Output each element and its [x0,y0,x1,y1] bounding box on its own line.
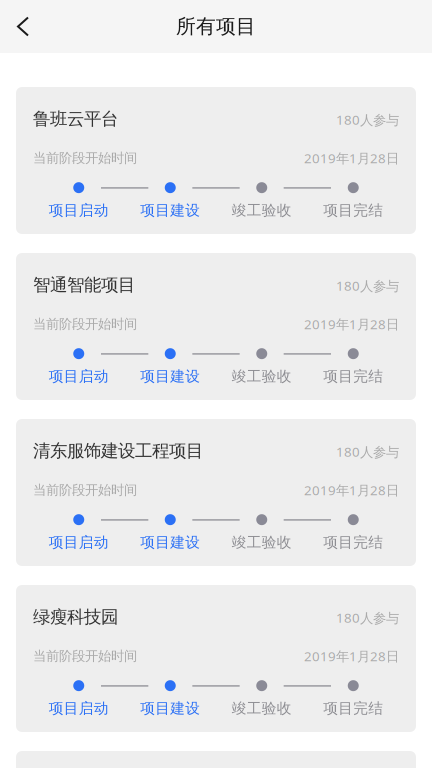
button[interactable]: 智通智能项目 [16,253,416,400]
staticText: 2019年1月28日 [304,481,399,499]
staticText: 鲁班云平台 [33,108,118,130]
staticText: 180人参与 [336,277,399,295]
staticText: 清东服饰建设工程项目 [33,440,203,462]
staticText: 项目启动 [49,533,109,552]
staticText: 智通智能项目 [33,274,135,296]
button[interactable]: 鲁班云平台 [16,87,416,234]
staticText: 项目完结 [323,533,383,552]
staticText: 项目完结 [323,699,383,718]
staticText: 180人参与 [336,443,399,461]
staticText: 当前阶段开始时间 [33,316,137,332]
staticText: 2019年1月28日 [304,315,399,333]
staticText: 180人参与 [336,111,399,129]
staticText: 所有项目 [176,14,256,39]
button[interactable]: Back [0,3,44,49]
staticText: 2019年1月28日 [304,149,399,167]
staticText: 竣工验收 [232,201,292,220]
staticText: 项目启动 [49,367,109,386]
staticText: 项目完结 [323,201,383,220]
staticText: 竣工验收 [232,699,292,718]
staticText: 项目启动 [49,201,109,220]
staticText: 项目建设 [140,201,200,220]
staticText: 项目建设 [140,367,200,386]
staticText: 当前阶段开始时间 [33,482,137,498]
staticText: 2019年1月28日 [304,647,399,665]
button[interactable]: 绿瘦科技园 [16,585,416,732]
button[interactable]: 清东服饰建设工程项目 [16,419,416,566]
staticText: 项目完结 [323,367,383,386]
staticText: 当前阶段开始时间 [33,648,137,664]
staticText: 竣工验收 [232,367,292,386]
staticText: 项目建设 [140,533,200,552]
staticText: 180人参与 [336,609,399,627]
staticText: 项目建设 [140,699,200,718]
staticText: 项目启动 [49,699,109,718]
staticText: 竣工验收 [232,533,292,552]
staticText: 绿瘦科技园 [33,606,118,628]
staticText: 当前阶段开始时间 [33,150,137,166]
